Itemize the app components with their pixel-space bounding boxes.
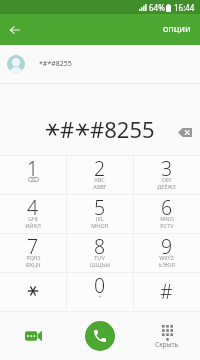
staticText: 0: [94, 272, 106, 299]
button[interactable]: 6: [133, 195, 200, 233]
button[interactable]: [0, 273, 66, 311]
staticText: #: [160, 278, 173, 305]
staticText: MNO: [160, 215, 174, 222]
staticText: #: [60, 114, 75, 144]
staticText: #8255: [90, 114, 155, 144]
staticText: 64%: [149, 2, 165, 13]
button[interactable]: Video call: [0, 312, 66, 360]
staticText: 7: [27, 233, 39, 260]
staticText: TUV: [94, 254, 105, 261]
button[interactable]: Back: [3, 18, 27, 42]
staticText: 5: [94, 194, 106, 221]
staticText: РСТУ: [160, 222, 174, 229]
staticText: *#*#8255: [39, 59, 72, 69]
staticText: GHI: [28, 215, 38, 222]
staticText: +: [98, 293, 102, 300]
button[interactable]: *#*#8255: [0, 45, 200, 83]
staticText: Скрыть: [155, 340, 179, 349]
button[interactable]: 8: [66, 234, 133, 272]
staticText: 9: [161, 233, 173, 260]
button[interactable]: 7: [0, 234, 66, 272]
button[interactable]: 2: [66, 156, 133, 194]
staticText: ОПЦИИ: [163, 25, 191, 35]
staticText: 3: [161, 155, 173, 182]
staticText: PQRS: [26, 254, 41, 261]
button[interactable]: 5: [66, 195, 133, 233]
staticText: АБВГ: [93, 183, 107, 190]
staticText: JKL: [96, 215, 104, 222]
button[interactable]: 4: [0, 195, 66, 233]
button[interactable]: 9: [133, 234, 200, 272]
staticText: 4: [27, 194, 39, 221]
button[interactable]: 1: [0, 156, 66, 194]
button[interactable]: #: [133, 273, 200, 311]
staticText: 16:44: [174, 2, 195, 13]
button[interactable]: Скрыть: [133, 312, 200, 360]
button[interactable]: 0: [66, 273, 133, 311]
staticText: ШЩЪЫ: [90, 261, 110, 268]
button[interactable]: ОПЦИИ: [154, 19, 200, 41]
staticText: ФХЦЧ: [25, 261, 41, 268]
staticText: 2: [94, 155, 106, 182]
button[interactable]: Call: [66, 312, 133, 360]
staticText: 1: [27, 155, 39, 182]
staticText: ЬЭЮЯ: [159, 261, 175, 268]
staticText: 6: [161, 194, 173, 221]
staticText: ИЙКЛ: [25, 222, 41, 229]
staticText: DEF: [162, 176, 172, 183]
staticText: WXYZ: [159, 254, 174, 261]
staticText: МНОП: [91, 222, 109, 229]
button[interactable]: Backspace: [173, 120, 197, 144]
button[interactable]: 3: [133, 156, 200, 194]
staticText: ABC: [94, 176, 105, 183]
staticText: ДЕЁЖЗ: [157, 183, 176, 190]
staticText: 8: [94, 233, 106, 260]
